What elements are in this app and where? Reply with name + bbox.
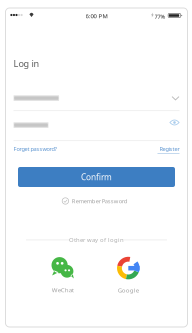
staticText: Remember Password xyxy=(72,197,128,205)
staticText: WeChat xyxy=(52,286,74,294)
staticText: Google xyxy=(118,286,139,294)
button[interactable]: Forget password? xyxy=(13,145,69,153)
button[interactable]: Confirm xyxy=(18,167,175,187)
staticText: Confirm xyxy=(81,171,112,183)
staticText: Log in xyxy=(13,57,39,70)
button[interactable]: Google xyxy=(108,258,148,293)
staticText: Forget password? xyxy=(13,145,56,153)
button[interactable]: Remember Password xyxy=(62,196,128,205)
button[interactable]: WeChat xyxy=(43,258,83,293)
staticText: Register xyxy=(159,145,179,153)
staticText: Other way of login xyxy=(69,236,124,244)
button[interactable]: Register xyxy=(155,145,179,155)
staticText: 6:00 PM xyxy=(85,12,107,20)
staticText: 77% xyxy=(154,13,165,20)
